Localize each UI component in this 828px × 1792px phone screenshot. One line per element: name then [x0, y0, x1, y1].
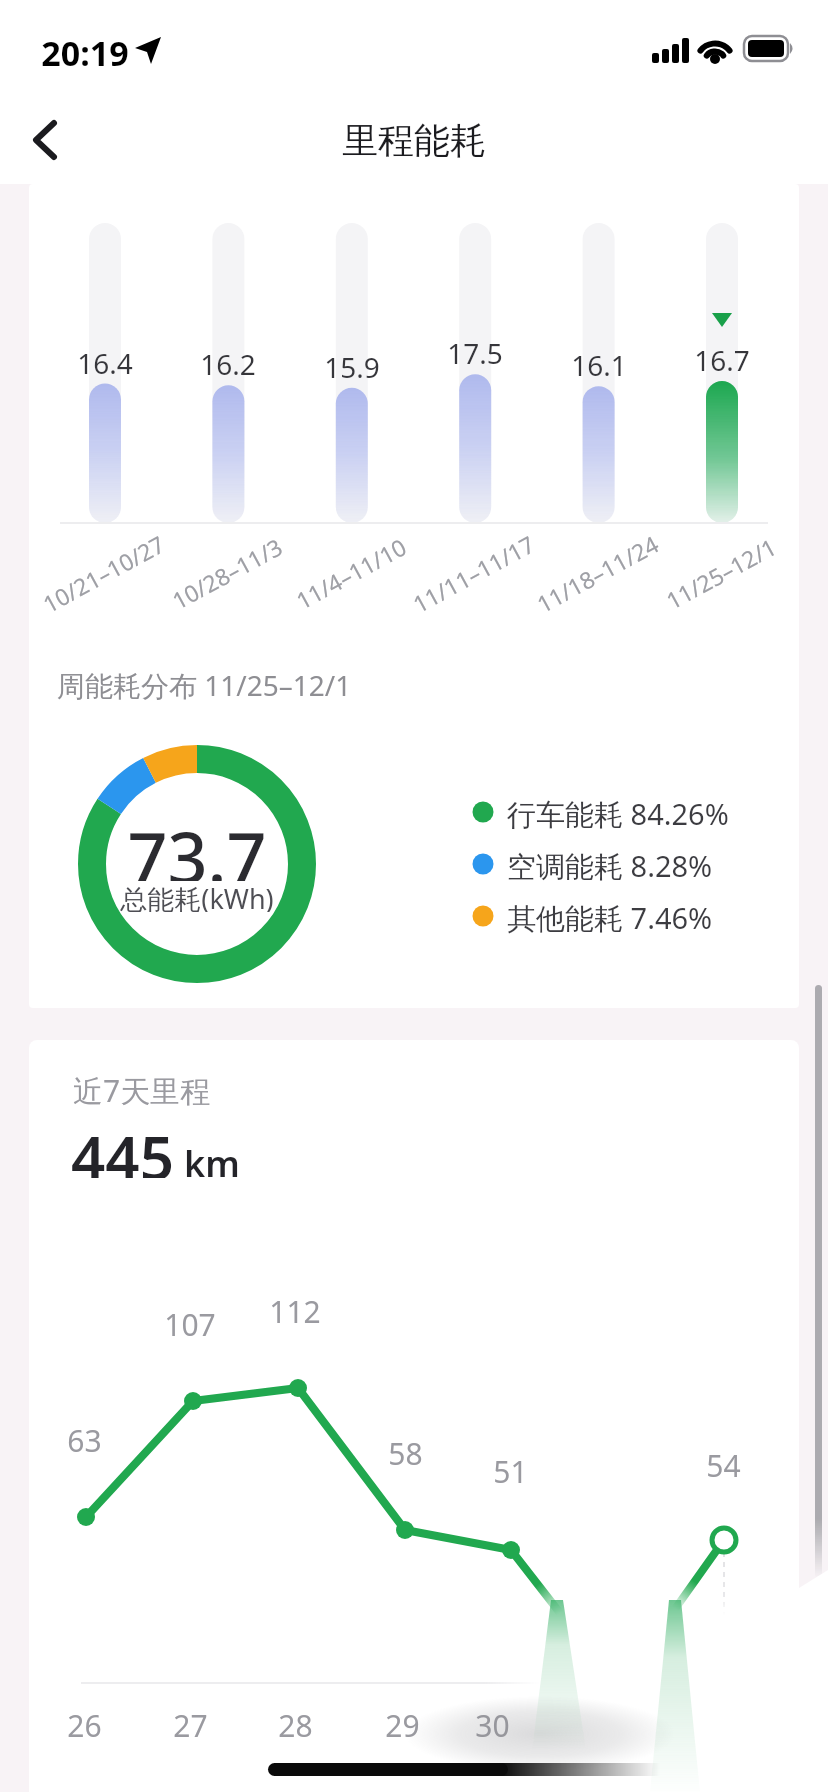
staticText: 29	[385, 1705, 420, 1741]
staticText: 总能耗(kWh)	[120, 880, 274, 912]
staticText: 16.2	[200, 345, 256, 379]
staticText: km	[184, 1139, 240, 1179]
staticText: 11/11–11/17	[407, 528, 539, 618]
button[interactable]	[20, 110, 80, 170]
staticText: 空调能耗 8.28%	[507, 846, 713, 882]
button[interactable]	[460, 790, 760, 834]
staticText: 51	[493, 1451, 528, 1487]
staticText: 其他能耗 7.46%	[507, 898, 713, 934]
staticText: 26	[67, 1705, 102, 1741]
staticText: 10/21–10/27	[37, 528, 169, 618]
staticText: 20:19	[41, 30, 129, 70]
staticText: 16.4	[77, 344, 133, 378]
staticText: 近7天里程	[73, 1070, 211, 1106]
staticText: 周能耗分布 11/25–12/1	[57, 666, 352, 700]
staticText: 54	[706, 1445, 741, 1481]
staticText: 73.7	[127, 809, 267, 881]
staticText: 16.1	[571, 346, 627, 380]
staticText: 107	[164, 1304, 216, 1340]
staticText: 30	[475, 1705, 510, 1741]
staticText: 16.7	[694, 341, 750, 375]
staticText: 15.9	[324, 348, 380, 382]
staticText: 28	[278, 1705, 313, 1741]
staticText: 10/28–11/3	[166, 531, 287, 615]
staticText: 11/4–11/10	[290, 531, 411, 615]
staticText: 行车能耗 84.26%	[507, 794, 729, 830]
staticText: 58	[388, 1433, 423, 1469]
staticText: 17.5	[447, 334, 503, 368]
staticText: 11/25–12/1	[660, 531, 781, 615]
staticText: 112	[269, 1291, 321, 1327]
staticText: 445	[71, 1116, 174, 1178]
staticText: 27	[173, 1705, 208, 1741]
staticText: 里程能耗	[342, 118, 486, 162]
staticText: 11/18–11/24	[531, 528, 663, 618]
staticText: 63	[67, 1420, 102, 1456]
